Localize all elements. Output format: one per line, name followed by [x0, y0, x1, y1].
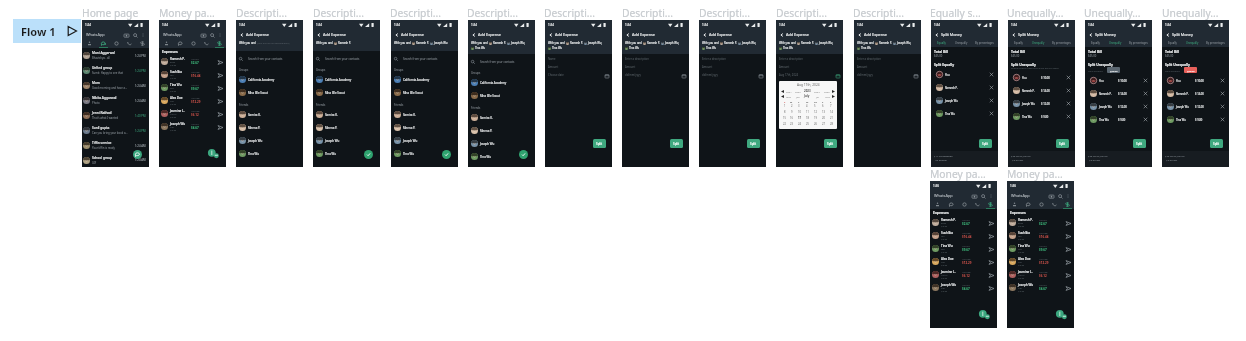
button[interactable]: Pick date [835, 73, 840, 78]
button[interactable]: Ramesh P. [159, 55, 226, 68]
button[interactable]: Remove person [1143, 91, 1148, 96]
button[interactable]: Back [471, 32, 476, 37]
button[interactable]: Tina Wu [930, 242, 997, 255]
button[interactable]: Remove person [1220, 91, 1225, 96]
button[interactable]: Tina Wu [391, 147, 458, 160]
button[interactable]: Pick date [913, 73, 918, 78]
button[interactable]: Search [1057, 193, 1063, 199]
button[interactable]: Joseph Wu [1007, 281, 1074, 294]
button[interactable]: Search from your contacts [391, 51, 458, 66]
button[interactable]: Miss Elle Scout [468, 89, 535, 102]
button[interactable]: Send reminder [988, 233, 994, 239]
button[interactable]: Tina Wu [1007, 242, 1074, 255]
button[interactable]: Unfied group [82, 63, 149, 78]
button[interactable]: Unequally [1182, 38, 1202, 47]
button[interactable]: Pick date [681, 73, 686, 78]
button[interactable]: Sushlika [1007, 229, 1074, 242]
button[interactable]: Status [110, 39, 123, 47]
button[interactable]: By percentages [1202, 38, 1229, 47]
button[interactable]: Joseph Wu [1008, 97, 1075, 110]
button[interactable]: Split [1056, 139, 1069, 148]
button[interactable]: Add expense [978, 308, 991, 321]
button[interactable]: More options [141, 33, 145, 37]
button[interactable]: Tina Wu [1162, 113, 1229, 126]
button[interactable]: Alex Doe [930, 255, 997, 268]
button[interactable]: Flow 1 [13, 19, 81, 43]
button[interactable]: Send reminder [1065, 233, 1071, 239]
button[interactable]: Back [1088, 32, 1093, 37]
button[interactable]: Back [702, 32, 707, 37]
button[interactable]: Jasmine L. [1007, 268, 1074, 281]
button[interactable]: Equally [931, 38, 951, 47]
button[interactable]: Equally [1008, 38, 1028, 47]
button[interactable]: Remove person [1143, 78, 1148, 83]
button[interactable]: Joseph Wu [930, 281, 997, 294]
button[interactable]: Confirm selection [442, 150, 451, 159]
button[interactable]: Jasmine L. [159, 107, 226, 120]
button[interactable]: Send reminder [217, 98, 223, 104]
button[interactable]: Send reminder [217, 111, 223, 117]
button[interactable]: Sushlika [159, 68, 226, 81]
button[interactable]: Remove person [1220, 104, 1225, 109]
button[interactable]: Send reminder [217, 59, 223, 65]
button[interactable]: Back [934, 32, 939, 37]
button[interactable]: Equally [1085, 38, 1105, 47]
button[interactable]: Search [980, 193, 986, 199]
button[interactable]: Samira K. [313, 108, 380, 121]
button[interactable]: Send reminder [988, 259, 994, 265]
button[interactable]: Samira K. [468, 111, 535, 124]
button[interactable]: Split [747, 139, 760, 148]
button[interactable]: Remove person [989, 111, 994, 116]
button[interactable]: Search [132, 32, 138, 38]
button[interactable]: Mani Aggarwal [82, 48, 149, 63]
button[interactable]: Calls [200, 39, 213, 47]
button[interactable]: Sunil gupta [82, 123, 149, 138]
button[interactable]: Money [213, 39, 226, 47]
button[interactable]: Remove person [1066, 88, 1071, 93]
button[interactable]: Remove person [1066, 101, 1071, 106]
button[interactable]: Send reminder [1065, 259, 1071, 265]
button[interactable]: Confirm selection [364, 150, 373, 159]
button[interactable]: School group [82, 153, 149, 167]
button[interactable]: By percentages [1048, 38, 1075, 47]
button[interactable]: Chats [96, 39, 110, 47]
button[interactable]: Samira K. [391, 108, 458, 121]
button[interactable]: Remove person [1220, 78, 1225, 83]
button[interactable]: Calls [123, 39, 136, 47]
button[interactable]: Tina Wu [313, 147, 380, 160]
button[interactable]: Ramesh P. [1162, 87, 1229, 100]
button[interactable]: Status [187, 39, 200, 47]
button[interactable]: Joseph Wu [236, 134, 303, 147]
button[interactable]: Search [209, 32, 215, 38]
button[interactable]: Joseph Wu [468, 137, 535, 150]
button[interactable]: Ramesh P. [930, 216, 997, 229]
button[interactable]: Sushlika [930, 229, 997, 242]
button[interactable]: Send reminder [988, 272, 994, 278]
button[interactable]: Tina Wu [159, 81, 226, 94]
button[interactable]: Miss Elle Scout [236, 86, 303, 99]
button[interactable]: Calls [971, 200, 984, 208]
button[interactable]: Jasmine L. [930, 268, 997, 281]
button[interactable]: Unequally [951, 38, 971, 47]
button[interactable]: Back [1165, 32, 1170, 37]
button[interactable]: Back [316, 32, 321, 37]
button[interactable]: Unequally [1028, 38, 1048, 47]
button[interactable]: Money [984, 200, 997, 208]
button[interactable]: Back [239, 32, 244, 37]
button[interactable]: Chats [944, 200, 958, 208]
button[interactable]: Remove person [1066, 114, 1071, 119]
button[interactable]: Remove person [1143, 104, 1148, 109]
button[interactable]: Remove person [989, 85, 994, 90]
button[interactable]: Pick date [604, 73, 609, 78]
button[interactable]: Split [670, 139, 683, 148]
button[interactable]: Money [136, 39, 149, 47]
button[interactable]: Joseph Wu [391, 134, 458, 147]
button[interactable]: Camera [123, 32, 129, 38]
button[interactable]: Send reminder [217, 124, 223, 130]
button[interactable]: Miss Elle Scout [391, 86, 458, 99]
button[interactable]: Back [394, 32, 399, 37]
button[interactable]: By percentages [971, 38, 998, 47]
button[interactable]: Split [824, 139, 837, 148]
button[interactable]: By percentages [1125, 38, 1152, 47]
button[interactable]: Tina Wu [931, 107, 998, 120]
